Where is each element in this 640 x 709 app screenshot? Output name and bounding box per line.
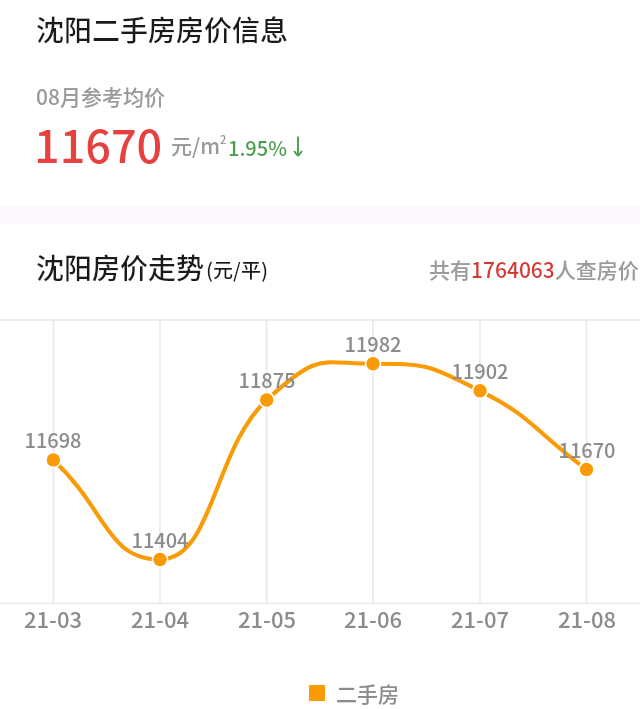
staticText: 沈阳二手房房价信息: [36, 9, 289, 50]
button[interactable]: 21-04: [112, 602, 208, 632]
staticText: 11902: [432, 356, 528, 385]
staticText: 11404: [112, 525, 208, 554]
staticText: 11875: [219, 365, 315, 394]
button[interactable]: 二手房: [309, 678, 399, 708]
button[interactable]: 沈阳房价走势: [0, 232, 640, 290]
button[interactable]: 21-05: [219, 602, 315, 632]
button[interactable]: 21-08: [539, 602, 635, 632]
staticText: 21-06: [325, 602, 421, 632]
staticText: 21-08: [539, 602, 635, 632]
button[interactable]: 沈阳二手房房价信息: [0, 0, 640, 205]
other: Price trending down: [293, 134, 303, 157]
staticText: 11670: [539, 435, 635, 464]
staticText: 11982: [325, 329, 421, 358]
staticText: 共有1764063人查房价: [429, 254, 639, 284]
button[interactable]: 21-06: [325, 602, 421, 632]
staticText: 沈阳房价走势: [36, 247, 205, 288]
staticText: 1.95%: [228, 133, 287, 162]
staticText: 21-07: [432, 602, 528, 632]
staticText: 21-04: [112, 602, 208, 632]
button[interactable]: 21-03: [5, 602, 101, 632]
staticText: 21-03: [5, 602, 101, 632]
staticText: 11698: [5, 425, 101, 454]
staticText: 二手房: [336, 678, 399, 708]
staticText: 11670: [34, 111, 163, 176]
staticText: 08月参考均价: [36, 81, 165, 111]
staticText: (元/平): [206, 255, 269, 284]
staticText: 元/m2: [171, 130, 227, 160]
button[interactable]: 21-07: [432, 602, 528, 632]
staticText: 21-05: [219, 602, 315, 632]
